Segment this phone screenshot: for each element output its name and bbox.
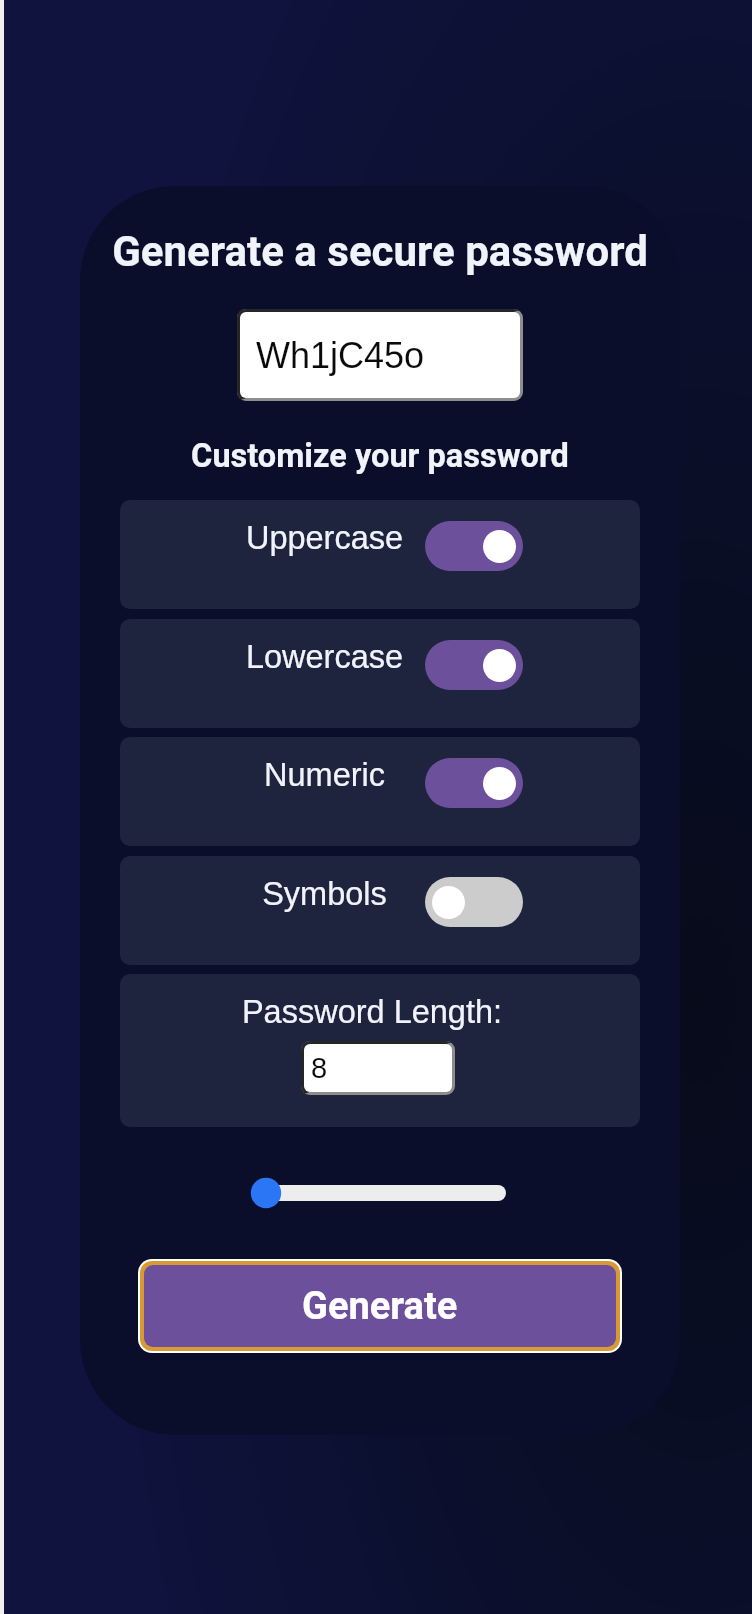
staticText: Generate (302, 1284, 458, 1329)
button[interactable]: Numeric (120, 737, 640, 846)
button[interactable]: 8 (301, 1041, 455, 1095)
staticText: Password Length: (120, 994, 632, 1030)
staticText: Uppercase (120, 520, 529, 556)
button[interactable]: Password length slider (253, 1169, 506, 1217)
staticText: Numeric (120, 757, 529, 793)
staticText: 8 (311, 1052, 328, 1084)
button[interactable]: Password Length: (120, 974, 640, 1127)
staticText: Wh1jC45o (256, 335, 425, 375)
button[interactable]: Wh1jC45o (237, 309, 523, 401)
button[interactable]: Uppercase (120, 500, 640, 609)
button[interactable]: Lowercase (120, 619, 640, 728)
button[interactable]: Symbols (120, 856, 640, 965)
staticText: Lowercase (120, 639, 529, 675)
staticText: Symbols (120, 876, 529, 912)
staticText: Customize your password (80, 437, 680, 475)
staticText: Generate a secure password (80, 227, 680, 276)
button[interactable]: Generate (144, 1265, 616, 1347)
